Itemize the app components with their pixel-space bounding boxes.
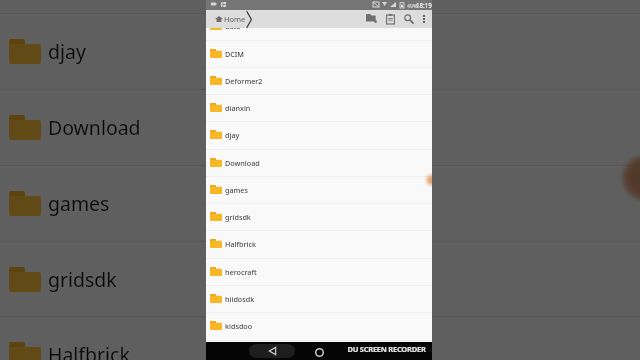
button[interactable]: Halfbrick bbox=[206, 230, 432, 257]
button[interactable]: djay bbox=[206, 121, 432, 148]
staticText: hiidosdk bbox=[225, 294, 255, 304]
button[interactable]: Search bbox=[401, 11, 416, 26]
staticText: Download bbox=[48, 114, 141, 141]
staticText: herocraft bbox=[225, 267, 257, 277]
staticText: DCIM bbox=[225, 49, 244, 59]
button[interactable]: games bbox=[206, 176, 432, 203]
button[interactable]: herocraft bbox=[206, 258, 432, 285]
button[interactable]: Download bbox=[206, 149, 432, 176]
staticText: data bbox=[225, 21, 241, 31]
button[interactable]: New folder bbox=[363, 11, 380, 26]
staticText: dianxin bbox=[225, 103, 251, 113]
button[interactable]: hiidosdk bbox=[206, 285, 432, 312]
button[interactable]: DCIM bbox=[206, 40, 432, 67]
staticText: DU SCREEN RECORDER bbox=[347, 344, 426, 354]
staticText: games bbox=[225, 185, 248, 195]
button[interactable]: Back bbox=[249, 344, 295, 358]
staticText: games bbox=[48, 190, 110, 217]
staticText: kidsdoo bbox=[225, 321, 253, 331]
staticText: Halfbrick bbox=[225, 239, 256, 249]
button[interactable]: kidsdoo bbox=[206, 312, 432, 339]
staticText: djay bbox=[48, 38, 86, 65]
button[interactable]: KS bbox=[206, 340, 432, 360]
staticText: Halfbrick bbox=[48, 341, 130, 360]
staticText: Download bbox=[225, 158, 260, 168]
staticText: Home bbox=[224, 14, 246, 24]
button[interactable]: Deformer2 bbox=[206, 67, 432, 94]
staticText: gridsdk bbox=[48, 266, 117, 293]
button[interactable]: Home bbox=[215, 14, 246, 24]
button[interactable]: gridsdk bbox=[206, 203, 432, 230]
button[interactable]: data bbox=[206, 12, 432, 39]
staticText: 49% bbox=[407, 2, 418, 9]
staticText: djay bbox=[225, 130, 240, 140]
button[interactable]: dianxin bbox=[206, 94, 432, 121]
button[interactable]: Home bbox=[314, 347, 325, 358]
staticText: Deformer2 bbox=[225, 76, 263, 86]
staticText: gridsdk bbox=[225, 212, 251, 222]
staticText: 18:19 bbox=[416, 1, 432, 9]
button[interactable]: More options bbox=[417, 11, 430, 26]
button[interactable]: Paste bbox=[383, 11, 398, 26]
